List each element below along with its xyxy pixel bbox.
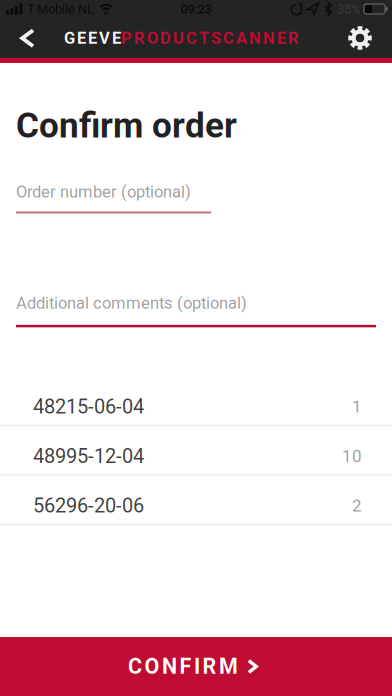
button[interactable]: 56296-20-06 [0,475,392,525]
staticText: 10 [342,446,362,466]
staticText: O [144,654,159,679]
staticText: E [112,28,121,48]
staticText: Additional comments (optional) [16,293,247,313]
staticText: R [202,654,216,679]
button[interactable]: 48995-12-04 [0,426,392,475]
staticText: G [64,28,75,48]
staticText: P [121,28,132,48]
staticText: U [173,28,184,48]
button[interactable]: Settings [348,18,392,58]
staticText: R [134,28,145,48]
staticText: F [179,654,191,679]
staticText: C [186,28,197,48]
staticText: N [263,28,275,48]
staticText: Order number (optional) [16,182,191,201]
staticText: M [219,654,238,679]
staticText: E [77,28,86,48]
staticText: D [160,28,171,48]
staticText: 2 [352,496,362,515]
staticText: E [277,28,286,48]
button[interactable]: Back [0,18,64,58]
staticText: R [288,28,299,48]
button[interactable]: Order number (optional) [16,182,376,213]
staticText: 56296-20-06 [33,494,144,517]
button[interactable]: C [0,637,392,696]
staticText: 48995-12-04 [33,444,144,468]
staticText: E [88,28,97,48]
staticText: I [194,654,200,679]
staticText: N [249,28,261,48]
staticText: Confirm order [16,105,237,146]
staticText: V [99,28,110,48]
staticText: 1 [352,397,362,416]
staticText: O [147,28,158,48]
staticText: A [236,28,247,48]
staticText: 48215-06-04 [33,395,144,418]
button[interactable]: 48215-06-04 [0,376,392,426]
button[interactable]: Additional comments (optional) [16,293,376,327]
staticText: 35% [337,1,360,16]
staticText: T-Mobile NL [27,1,94,16]
staticText: C [128,654,142,679]
staticText: N [162,654,177,679]
staticText: T [199,28,209,48]
staticText: 09:23 [180,1,211,16]
staticText: C [223,28,234,48]
staticText: S [211,28,221,48]
